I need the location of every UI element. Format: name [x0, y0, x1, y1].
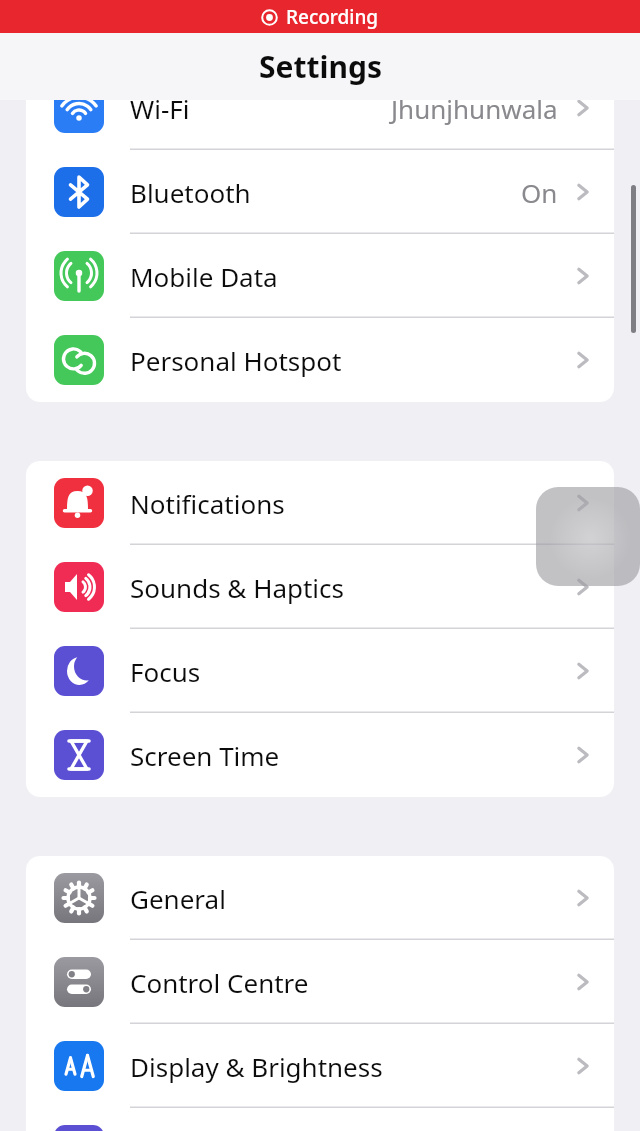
button[interactable]: Wi-Fi [26, 66, 614, 150]
button[interactable]: Screen Time [26, 713, 614, 797]
staticText: Wi-Fi [130, 91, 190, 126]
staticText: General [130, 881, 226, 916]
button[interactable]: Notifications [26, 461, 614, 545]
staticText: Mobile Data [130, 259, 278, 294]
button[interactable]: Display & Brightness [26, 1024, 614, 1108]
staticText: Recording [286, 4, 379, 30]
staticText: Settings [259, 46, 382, 87]
button[interactable]: Bluetooth [26, 150, 614, 234]
staticText: Personal Hotspot [130, 343, 342, 378]
button[interactable]: Personal Hotspot [26, 318, 614, 402]
staticText: Jhunjhunwala [391, 91, 558, 126]
staticText: Bluetooth [130, 175, 251, 210]
button[interactable] [26, 1108, 614, 1131]
button[interactable]: Control Centre [26, 940, 614, 1024]
staticText: On [521, 175, 558, 210]
staticText: Control Centre [130, 965, 309, 1000]
staticText: Focus [130, 654, 201, 689]
button[interactable]: Mobile Data [26, 234, 614, 318]
button[interactable]: General [26, 856, 614, 940]
staticText: Notifications [130, 486, 285, 521]
button[interactable]: Focus [26, 629, 614, 713]
button[interactable]: Sounds & Haptics [26, 545, 614, 629]
button[interactable]: AssistiveTouch [536, 487, 640, 586]
staticText: Display & Brightness [130, 1049, 383, 1084]
staticText: Screen Time [130, 738, 280, 773]
staticText: Sounds & Haptics [130, 570, 345, 605]
